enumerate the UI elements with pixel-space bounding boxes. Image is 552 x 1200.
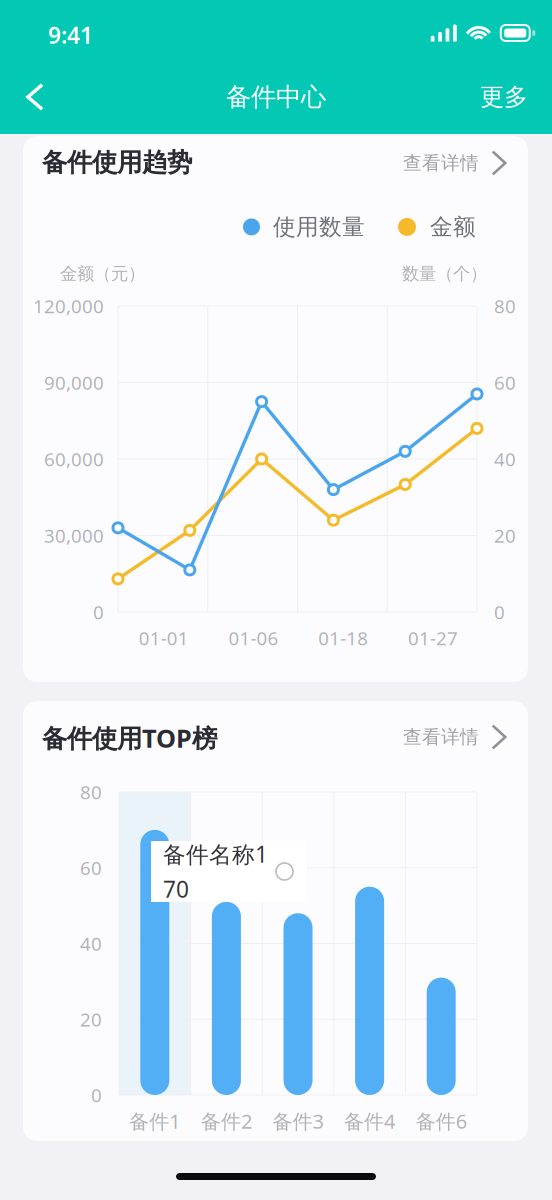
staticText: 60 — [80, 855, 102, 880]
staticText: 使用数量 — [273, 213, 365, 241]
staticText: 20 — [80, 1007, 102, 1032]
staticText: 0 — [494, 600, 505, 624]
staticText: 80 — [80, 780, 102, 804]
staticText: 备件使用趋势 — [42, 147, 192, 178]
staticText: 查看详情 — [403, 151, 479, 174]
staticText: 40 — [80, 931, 102, 956]
staticText: 01-06 — [228, 626, 278, 650]
staticText: 备件1 — [129, 1108, 180, 1134]
staticText: 120,000 — [33, 294, 104, 318]
staticText: 90,000 — [44, 370, 104, 395]
staticText: 备件6 — [416, 1108, 467, 1134]
staticText: 数量（个） — [402, 263, 487, 284]
staticText: 备件使用TOP榜 — [42, 721, 217, 755]
button[interactable]: 查看详情 — [391, 138, 528, 188]
staticText: 60,000 — [44, 447, 104, 471]
button[interactable]: Back — [0, 60, 68, 134]
staticText: 40 — [494, 447, 516, 471]
staticText: 01-01 — [139, 626, 189, 650]
staticText: 30,000 — [44, 523, 104, 548]
staticText: 更多 — [480, 82, 528, 112]
staticText: 备件2 — [201, 1108, 252, 1134]
staticText: 0 — [91, 1083, 102, 1107]
staticText: 金额 — [430, 213, 476, 241]
staticText: 01-18 — [318, 626, 368, 650]
staticText: 备件3 — [272, 1108, 323, 1134]
staticText: 备件中心 — [226, 81, 326, 112]
button[interactable]: 查看详情 — [391, 712, 528, 762]
staticText: 备件名称1 — [163, 839, 268, 869]
staticText: 金额（元） — [60, 263, 145, 284]
staticText: 查看详情 — [403, 725, 479, 748]
button[interactable]: 更多 — [462, 60, 552, 134]
staticText: 80 — [494, 294, 516, 318]
staticText: 20 — [494, 523, 516, 548]
staticText: 01-27 — [408, 626, 458, 650]
staticText: 60 — [494, 370, 516, 395]
staticText: 9:41 — [48, 20, 93, 50]
staticText: 70 — [163, 874, 189, 904]
staticText: 0 — [93, 600, 104, 624]
staticText: 备件4 — [344, 1108, 395, 1134]
